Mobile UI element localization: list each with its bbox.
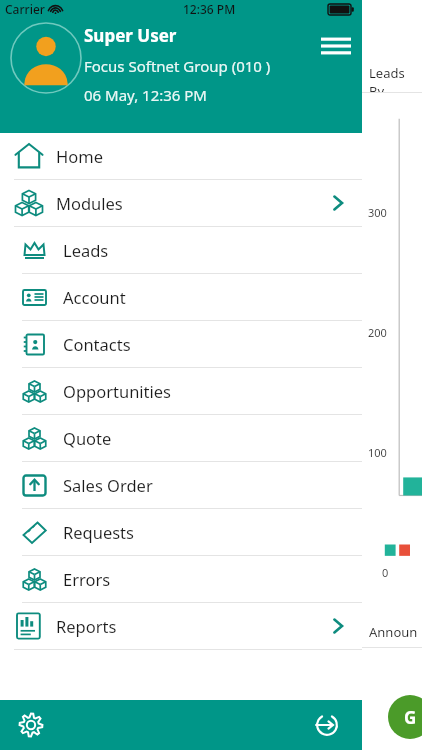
staticText: Opportunities [63, 380, 172, 402]
button[interactable]: Modules [0, 180, 362, 227]
staticText: Requests [63, 521, 134, 543]
button[interactable]: Home [0, 133, 362, 180]
staticText: 0 [382, 565, 389, 580]
staticText: Home [56, 145, 103, 167]
staticText: Leads By [369, 64, 422, 92]
staticText: Super User [84, 24, 177, 47]
button[interactable]: Quote [0, 415, 362, 462]
button[interactable]: Errors [0, 556, 362, 603]
button[interactable]: Requests [0, 509, 362, 556]
staticText: Leads [63, 239, 109, 261]
staticText: 300 [368, 205, 387, 220]
button[interactable]: Reports [0, 603, 362, 650]
button[interactable]: Chat [388, 695, 422, 739]
staticText: 200 [368, 325, 387, 340]
staticText: Reports [56, 615, 117, 637]
staticText: Sales Order [63, 474, 153, 496]
button[interactable]: Leads [0, 227, 362, 274]
button[interactable]: Contacts [0, 321, 362, 368]
staticText: G [404, 706, 417, 729]
button[interactable]: Account [0, 274, 362, 321]
button[interactable]: Settings [14, 708, 48, 742]
staticText: Quote [63, 427, 112, 449]
staticText: Announ [369, 623, 418, 641]
button[interactable]: Logout [310, 708, 344, 742]
staticText: Focus Softnet Group (010 ) [84, 56, 271, 76]
staticText: 12:36 PM [183, 1, 236, 17]
button[interactable]: Sales Order [0, 462, 362, 509]
staticText: Account [63, 286, 126, 308]
staticText: Modules [56, 192, 123, 214]
button[interactable]: Opportunities [0, 368, 362, 415]
staticText: Contacts [63, 333, 131, 355]
button[interactable]: Menu [316, 26, 356, 66]
staticText: Errors [63, 568, 111, 590]
staticText: 100 [368, 445, 387, 460]
staticText: 06 May, 12:36 PM [84, 85, 207, 105]
staticText: Carrier [5, 1, 45, 17]
